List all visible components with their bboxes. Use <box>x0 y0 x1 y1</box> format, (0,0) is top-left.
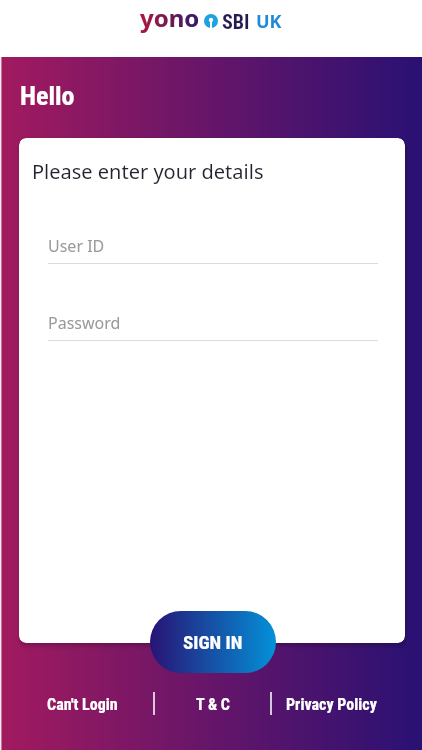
staticText: T & C <box>196 695 230 714</box>
staticText: Can't Login <box>47 695 118 714</box>
staticText: Hello <box>20 81 75 111</box>
staticText: Privacy Policy <box>286 695 377 714</box>
staticText: SIGN IN <box>183 631 243 653</box>
staticText: Please enter your details <box>32 158 264 185</box>
staticText: UK <box>256 9 282 34</box>
staticText: Password <box>48 312 121 334</box>
button[interactable]: SIGN IN <box>150 611 276 673</box>
button[interactable]: Can't Login <box>47 695 118 714</box>
button[interactable]: Privacy Policy <box>286 695 377 714</box>
staticText: User ID <box>48 235 105 257</box>
staticText: SBI <box>222 10 250 33</box>
button[interactable]: T & C <box>196 695 230 714</box>
staticText: yono <box>140 1 200 34</box>
